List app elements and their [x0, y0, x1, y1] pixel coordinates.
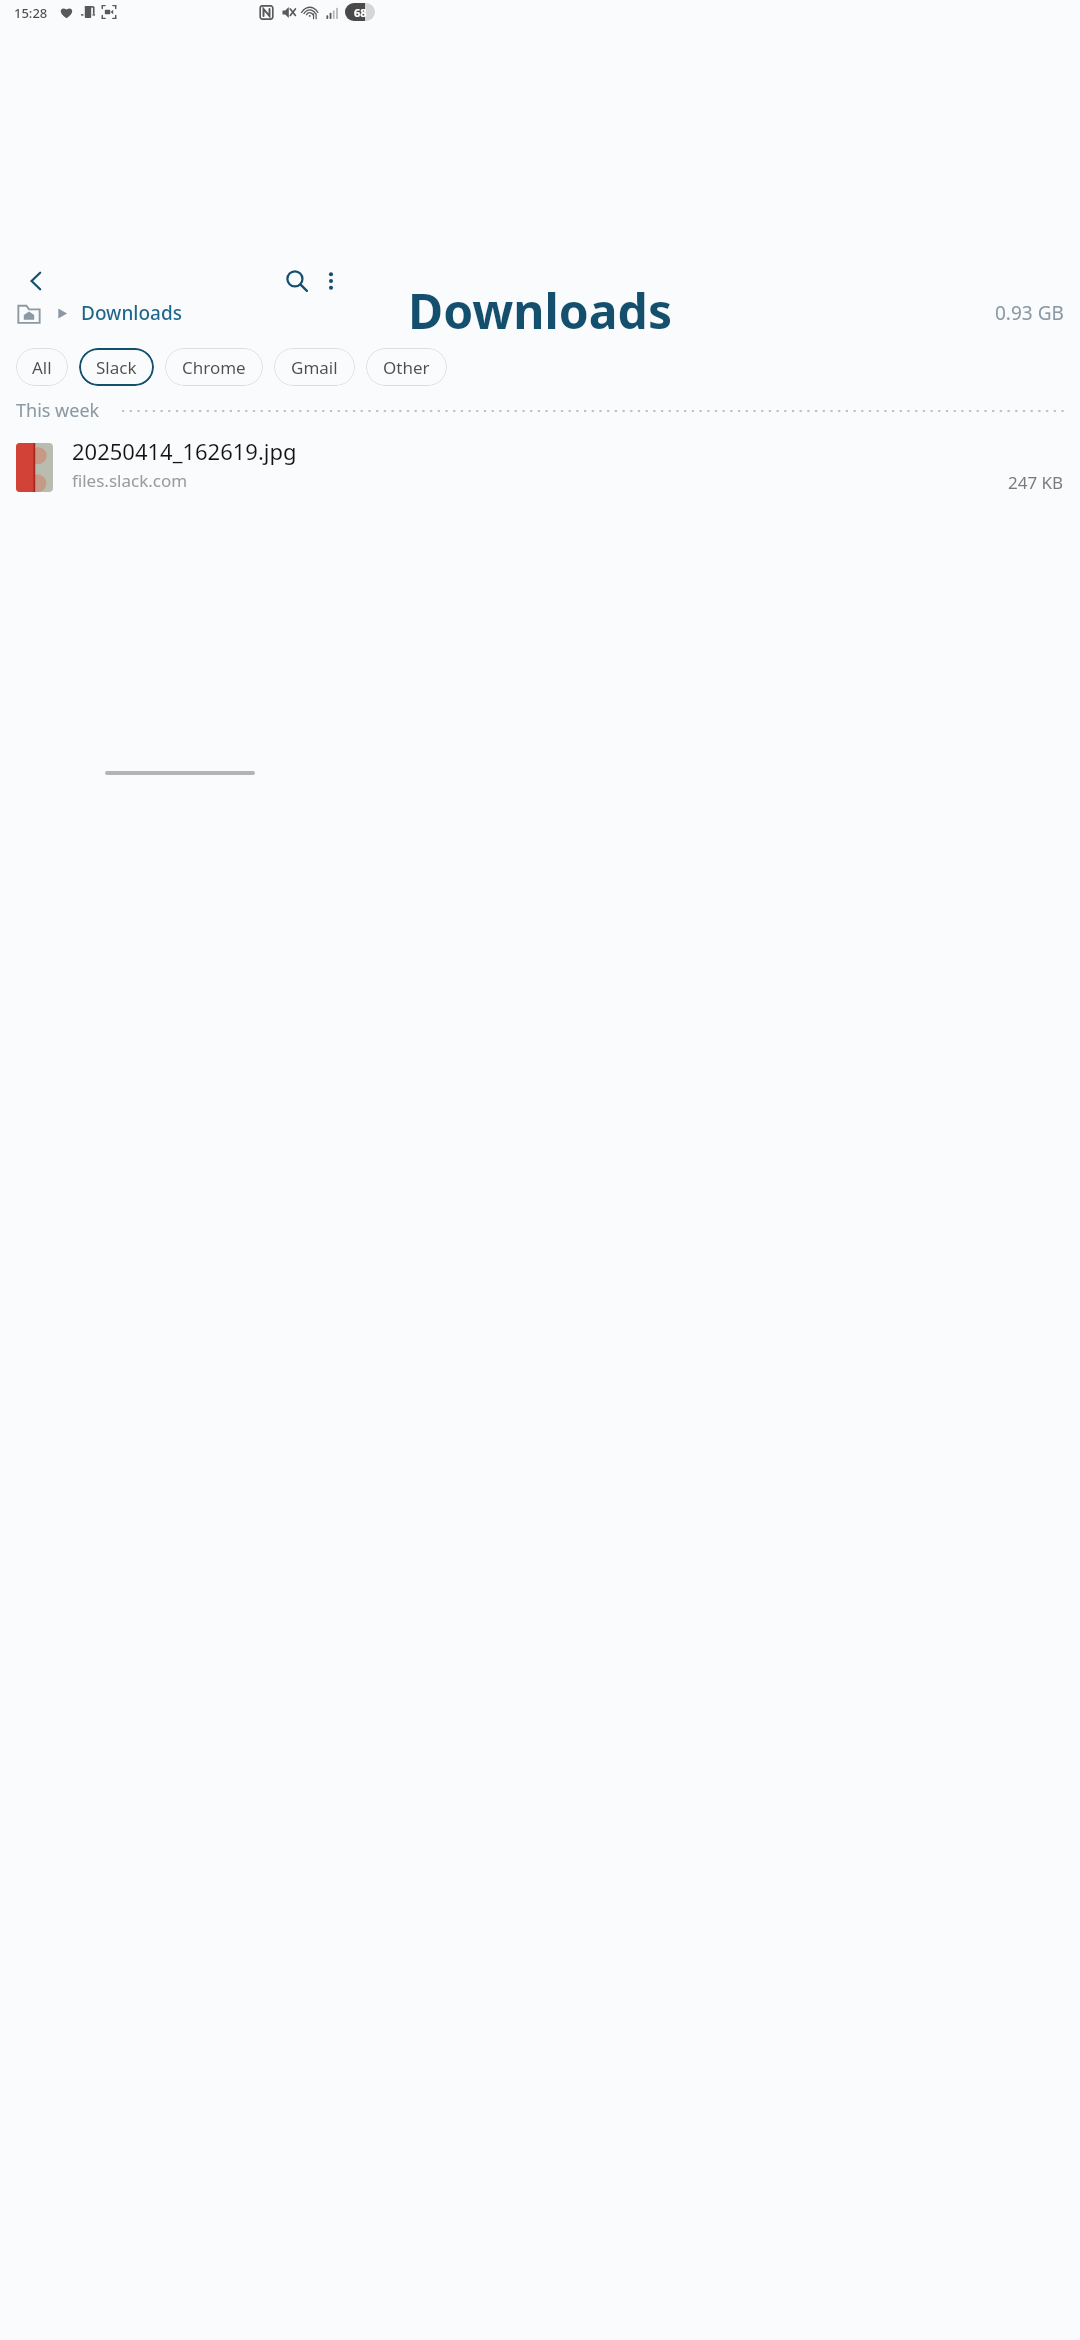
button[interactable]: All — [16, 348, 68, 386]
staticText: Chrome — [182, 356, 246, 379]
staticText: 15:28 — [14, 4, 48, 22]
staticText: 68 — [354, 5, 367, 20]
button[interactable]: 20250414_162619.jpg — [16, 436, 1064, 498]
staticText: Slack — [96, 356, 137, 379]
button[interactable]: Slack — [79, 348, 154, 386]
button[interactable]: Downloads — [16, 288, 1064, 338]
staticText: 20250414_162619.jpg — [72, 436, 297, 466]
staticText: Gmail — [291, 356, 338, 379]
button[interactable]: Other — [366, 348, 447, 386]
staticText: This week — [16, 398, 100, 423]
staticText: All — [32, 356, 52, 379]
button[interactable]: Chrome — [165, 348, 263, 386]
staticText: Downloads — [81, 300, 182, 326]
staticText: 247 KB — [1008, 471, 1064, 494]
button[interactable]: Back — [10, 255, 62, 307]
staticText: 0.93 GB — [995, 300, 1064, 326]
staticText: Other — [383, 356, 430, 379]
button[interactable]: Search — [271, 255, 323, 307]
staticText: files.slack.com — [72, 469, 188, 492]
button[interactable]: Gmail — [274, 348, 355, 386]
button[interactable]: More options — [305, 255, 357, 307]
staticText: Downloads — [0, 278, 1080, 343]
